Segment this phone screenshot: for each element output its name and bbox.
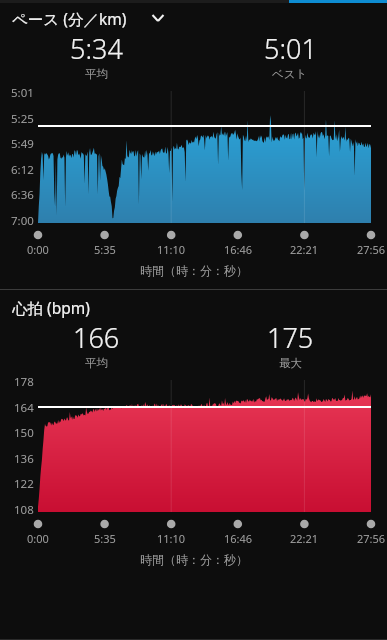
- staticText: 5:35: [94, 531, 116, 546]
- staticText: 6:36: [11, 187, 34, 203]
- staticText: 5:49: [11, 136, 34, 152]
- staticText: 27:56: [357, 531, 386, 546]
- staticText: 178: [14, 374, 34, 390]
- staticText: 7:00: [11, 213, 34, 229]
- staticText: 11:10: [157, 531, 186, 546]
- staticText: 5:35: [94, 242, 116, 257]
- staticText: 16:46: [224, 242, 253, 257]
- staticText: 0:00: [27, 242, 49, 257]
- staticText: 175: [267, 319, 314, 356]
- staticText: 最大: [279, 356, 302, 370]
- staticText: 5:34: [70, 30, 123, 67]
- staticText: 16:46: [224, 531, 253, 546]
- staticText: 時間（時：分：秒）: [140, 552, 248, 567]
- staticText: 11:10: [157, 242, 186, 257]
- staticText: 5:01: [264, 30, 317, 67]
- staticText: ベスト: [272, 67, 308, 81]
- button[interactable]: 心拍 (bpm): [0, 293, 387, 319]
- staticText: 22:21: [290, 531, 319, 546]
- staticText: 5:01: [11, 85, 34, 101]
- staticText: 166: [73, 319, 120, 356]
- staticText: 時間（時：分：秒）: [140, 263, 248, 278]
- staticText: ペース (分／km): [12, 8, 127, 29]
- staticText: 5:25: [11, 111, 34, 127]
- staticText: 平均: [85, 356, 108, 370]
- staticText: 22:21: [290, 242, 319, 257]
- staticText: 108: [14, 502, 34, 518]
- staticText: 136: [14, 451, 34, 467]
- staticText: 122: [14, 476, 34, 492]
- staticText: 平均: [85, 67, 108, 81]
- staticText: 心拍 (bpm): [12, 297, 90, 318]
- button[interactable]: ペース (分／km): [0, 3, 387, 30]
- staticText: 0:00: [27, 531, 49, 546]
- staticText: 6:12: [11, 162, 34, 178]
- staticText: 164: [14, 400, 34, 416]
- other: Change metric: [147, 7, 169, 29]
- staticText: 27:56: [357, 242, 386, 257]
- staticText: 150: [14, 425, 34, 441]
